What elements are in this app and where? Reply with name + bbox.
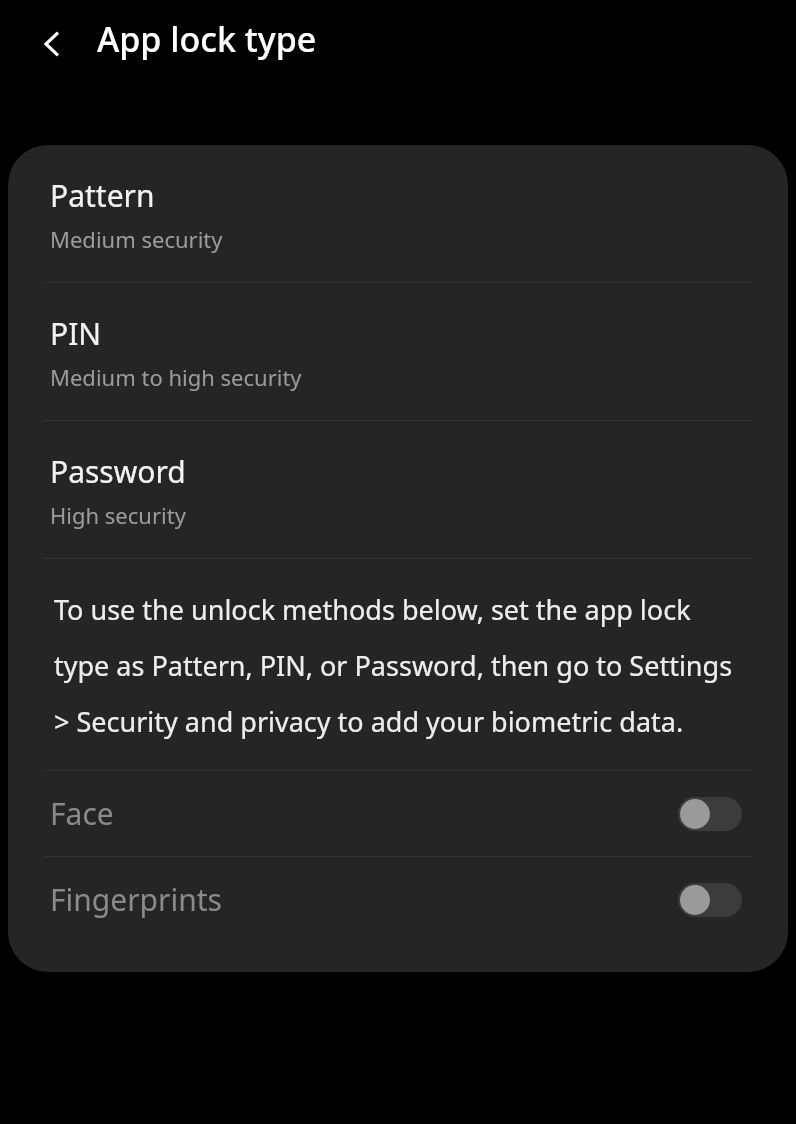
button[interactable]: Toggle Face (678, 797, 742, 831)
staticText: High security (50, 500, 186, 530)
staticText: Medium security (50, 224, 223, 254)
button[interactable]: Face (8, 771, 788, 856)
staticText: Medium to high security (50, 362, 302, 392)
button[interactable]: PIN (8, 283, 788, 420)
staticText: PIN (50, 313, 102, 354)
staticText: Fingerprints (50, 879, 678, 920)
button[interactable]: Pattern (8, 145, 788, 282)
button[interactable]: Toggle Fingerprints (678, 883, 742, 917)
staticText: Face (50, 793, 678, 834)
staticText: App lock type (97, 16, 317, 62)
staticText: Pattern (50, 175, 155, 216)
button[interactable]: Password (8, 421, 788, 558)
button[interactable]: Fingerprints (8, 857, 788, 942)
button[interactable]: Back (18, 10, 86, 78)
staticText: Password (50, 451, 186, 492)
staticText: To use the unlock methods below, set the… (54, 591, 742, 740)
